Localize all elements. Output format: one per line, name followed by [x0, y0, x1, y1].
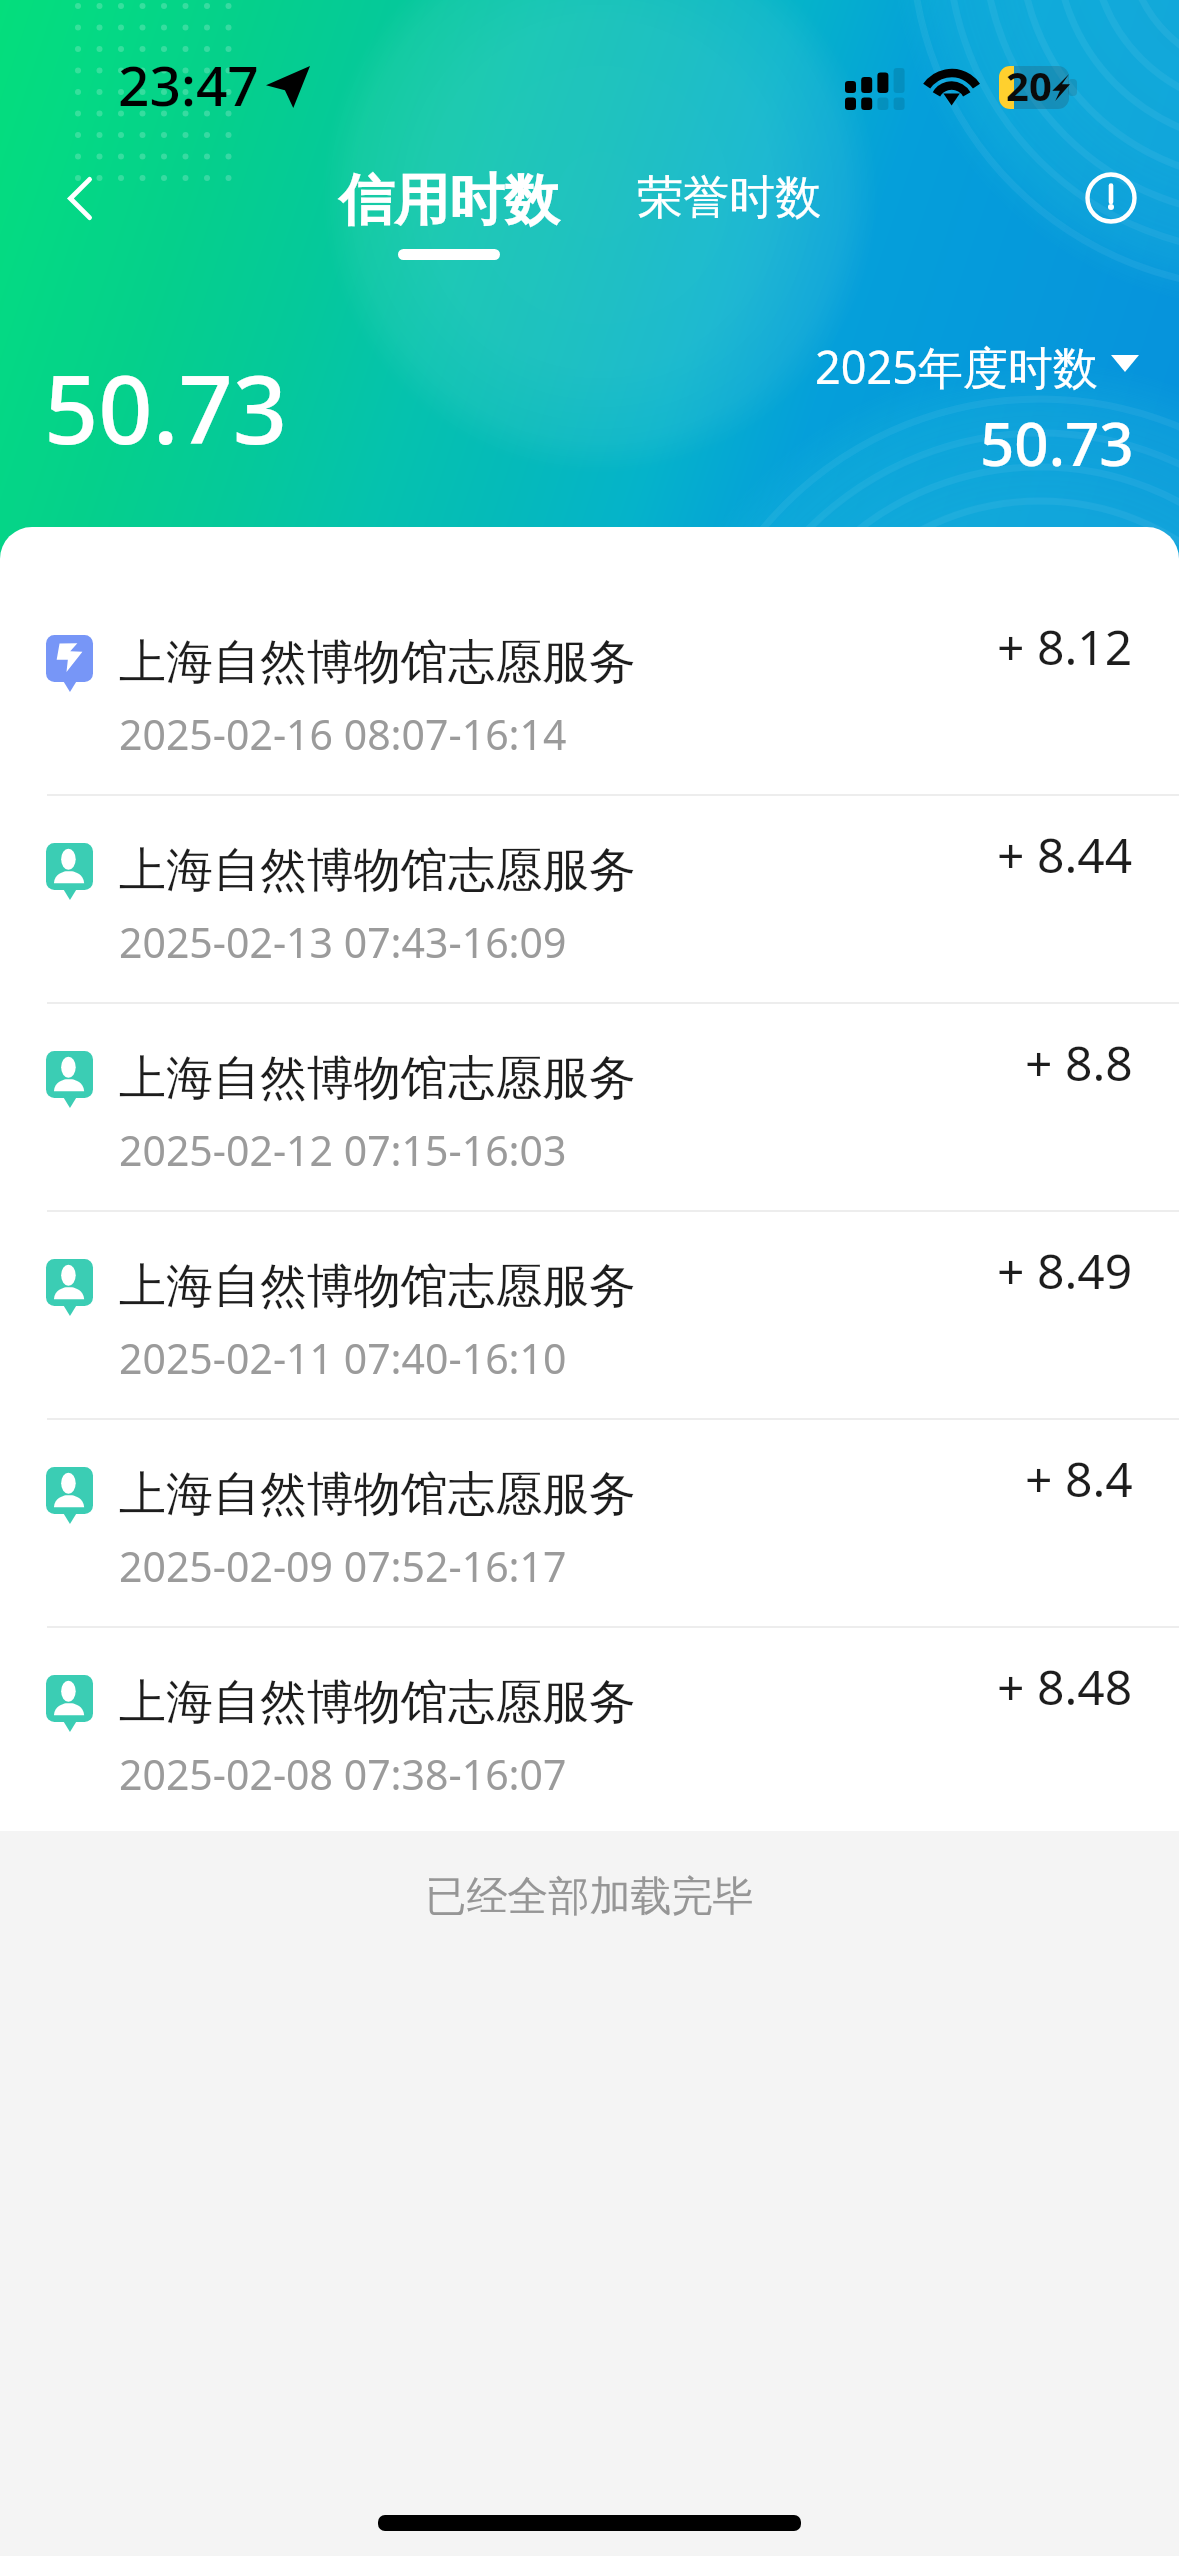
staticText: 上海自然博物馆志愿服务: [119, 1465, 636, 1524]
staticText: 上海自然博物馆志愿服务: [119, 633, 636, 692]
staticText: 上海自然博物馆志愿服务: [119, 1673, 636, 1732]
staticText: 2025年度时数: [815, 336, 1098, 397]
button[interactable]: 上海自然博物馆志愿服务: [0, 1420, 1179, 1626]
staticText: 2025-02-12 07:15-16:03: [119, 1122, 567, 1178]
staticText: 荣誉时数: [637, 169, 821, 227]
button[interactable]: 上海自然博物馆志愿服务: [0, 588, 1179, 794]
button[interactable]: 信用时数: [320, 166, 578, 276]
staticText: 信用时数: [339, 166, 559, 235]
staticText: 2025-02-08 07:38-16:07: [119, 1746, 567, 1802]
staticText: + 8.49: [997, 1238, 1133, 1303]
staticText: + 8.8: [1025, 1030, 1133, 1095]
button[interactable]: Back: [18, 150, 138, 270]
staticText: + 8.12: [997, 614, 1133, 679]
staticText: + 8.48: [997, 1654, 1133, 1719]
staticText: + 8.4: [1025, 1446, 1133, 1511]
staticText: 50.73: [980, 402, 1134, 484]
button[interactable]: 荣誉时数: [618, 169, 840, 249]
staticText: 上海自然博物馆志愿服务: [119, 1049, 636, 1108]
button[interactable]: 上海自然博物馆志愿服务: [0, 1212, 1179, 1418]
staticText: 2025-02-09 07:52-16:17: [119, 1538, 567, 1594]
staticText: 2025-02-16 08:07-16:14: [119, 706, 567, 762]
button[interactable]: 上海自然博物馆志愿服务: [0, 1628, 1179, 1831]
staticText: 50.73: [44, 342, 288, 471]
button[interactable]: Info: [1051, 138, 1171, 258]
button[interactable]: 2025年度时数: [815, 333, 1139, 484]
staticText: 已经全部加载完毕: [0, 1871, 1179, 1923]
staticText: 20: [1006, 58, 1052, 101]
staticText: 上海自然博物馆志愿服务: [119, 841, 636, 900]
button[interactable]: 上海自然博物馆志愿服务: [0, 796, 1179, 1002]
staticText: 上海自然博物馆志愿服务: [119, 1257, 636, 1316]
button[interactable]: 上海自然博物馆志愿服务: [0, 1004, 1179, 1210]
staticText: 23:47: [118, 47, 259, 122]
staticText: 2025-02-11 07:40-16:10: [119, 1330, 567, 1386]
staticText: + 8.44: [997, 822, 1133, 887]
staticText: 2025-02-13 07:43-16:09: [119, 914, 567, 970]
